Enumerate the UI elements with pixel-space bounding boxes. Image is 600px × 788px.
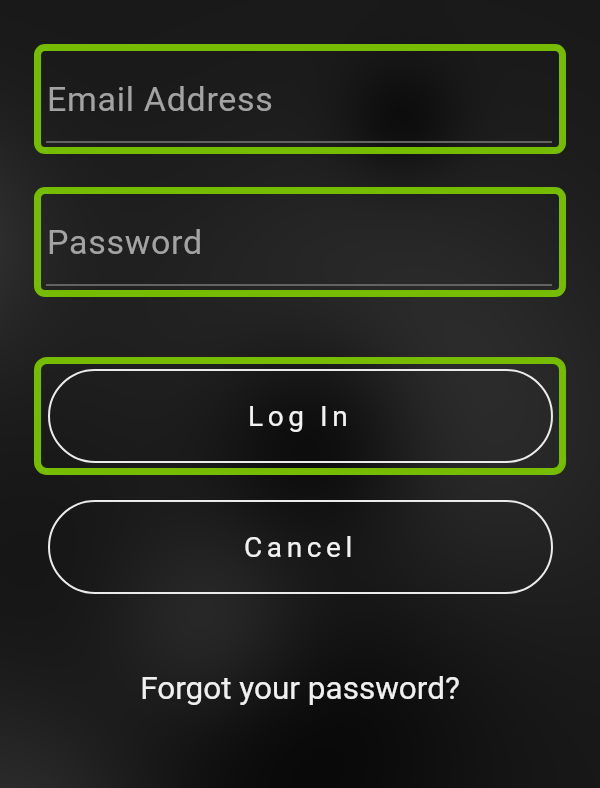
staticText: Email Address xyxy=(47,79,274,119)
button[interactable]: Password xyxy=(34,187,566,297)
staticText: Log In xyxy=(248,400,353,433)
button[interactable]: Cancel xyxy=(48,500,553,594)
button[interactable]: Forgot your password? xyxy=(130,665,470,711)
staticText: Forgot your password? xyxy=(140,670,460,707)
button[interactable]: Email Address xyxy=(34,44,566,154)
staticText: Password xyxy=(47,222,203,262)
button[interactable]: Log In xyxy=(48,369,553,463)
staticText: Cancel xyxy=(244,531,357,564)
